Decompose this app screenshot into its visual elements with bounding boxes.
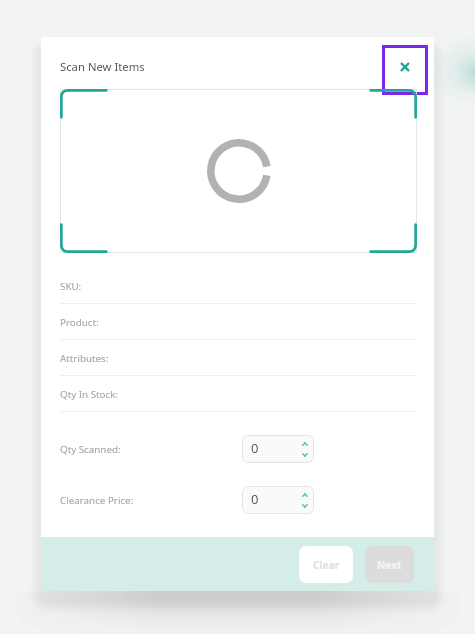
- button[interactable]: Decrement Qty Scanned:: [299, 449, 311, 462]
- staticText: Scan New Items: [60, 59, 145, 74]
- staticText: 0: [251, 439, 259, 457]
- button[interactable]: Next: [365, 546, 414, 583]
- button[interactable]: Increment Qty Scanned:: [299, 436, 311, 449]
- button[interactable]: Clear: [299, 546, 353, 583]
- button[interactable]: Close: [382, 45, 428, 95]
- staticText: 0: [251, 490, 259, 508]
- button[interactable]: 0: [242, 435, 314, 463]
- staticText: Attributes:: [60, 352, 109, 365]
- staticText: Qty Scanned:: [60, 443, 121, 456]
- staticText: Clearance Price:: [60, 494, 134, 507]
- staticText: Product:: [60, 316, 99, 329]
- button[interactable]: Increment Clearance Price:: [299, 487, 311, 500]
- staticText: Clear: [313, 558, 340, 572]
- staticText: SKU:: [60, 280, 82, 293]
- staticText: Qty In Stock:: [60, 388, 119, 401]
- staticText: Next: [377, 558, 402, 572]
- button[interactable]: 0: [242, 486, 314, 514]
- button[interactable]: Decrement Clearance Price:: [299, 500, 311, 513]
